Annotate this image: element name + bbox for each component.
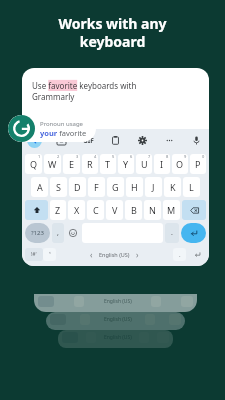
button[interactable]: Y <box>118 154 134 174</box>
button[interactable]: W <box>44 154 61 174</box>
staticText: 7 <box>148 154 151 159</box>
button[interactable]: O <box>172 154 188 174</box>
button[interactable]: Z <box>50 200 66 220</box>
button[interactable]: More options <box>162 133 177 148</box>
button[interactable]: A <box>31 177 48 197</box>
staticText: C <box>93 204 99 216</box>
button[interactable]: D <box>69 177 86 197</box>
staticText: H <box>131 181 138 193</box>
button[interactable]: C <box>87 200 104 220</box>
staticText: P <box>195 158 201 170</box>
staticText: 3 <box>76 154 79 159</box>
button[interactable]: V <box>106 200 123 220</box>
button[interactable]: Clipboard <box>108 133 123 148</box>
staticText: 2 <box>57 154 60 159</box>
staticText: Use favorite keyboards with Grammarly <box>32 80 137 103</box>
button[interactable]: S <box>50 177 67 197</box>
button[interactable]: Back <box>27 133 42 148</box>
staticText: English (US) <box>99 251 130 258</box>
staticText: B <box>131 204 137 216</box>
button[interactable]: Shift <box>25 200 48 220</box>
button[interactable]: M <box>163 200 180 220</box>
staticText: › <box>136 249 139 260</box>
staticText: English (US) <box>104 316 132 323</box>
staticText: English (US) <box>104 298 132 305</box>
button[interactable]: GIF <box>81 134 96 147</box>
staticText: E <box>69 158 75 170</box>
staticText: S <box>56 181 61 193</box>
button[interactable]: E <box>63 154 80 174</box>
staticText: 5 <box>112 154 115 159</box>
staticText: T <box>105 158 111 170</box>
button[interactable]: R <box>82 154 98 174</box>
staticText: J <box>152 181 155 193</box>
staticText: !#' <box>31 251 37 258</box>
button[interactable]: Comma <box>52 223 64 243</box>
button[interactable]: Settings <box>135 133 150 148</box>
staticText: V <box>112 204 118 216</box>
staticText: . <box>171 228 173 238</box>
button[interactable]: K <box>164 177 181 197</box>
staticText: ?123 <box>31 229 44 237</box>
staticText: G <box>112 181 119 193</box>
staticText: English (US) <box>104 334 132 341</box>
button[interactable]: Period <box>173 248 186 261</box>
staticText: K <box>170 181 176 193</box>
button[interactable]: Q <box>25 154 42 174</box>
staticText: . <box>179 251 181 259</box>
button[interactable]: Next language <box>136 249 139 260</box>
staticText: your favorite <box>40 128 87 138</box>
staticText: ‹ <box>90 249 93 260</box>
staticText: F <box>94 181 99 193</box>
staticText: M <box>167 204 176 216</box>
staticText: R <box>87 158 93 170</box>
button[interactable]: Symbols <box>43 248 56 261</box>
button[interactable]: Previous language <box>90 249 93 260</box>
button[interactable]: Return <box>188 248 206 261</box>
button[interactable]: T <box>100 154 116 174</box>
staticText: 0 <box>202 154 205 159</box>
staticText: Z <box>55 204 61 216</box>
button[interactable]: B <box>125 200 142 220</box>
button[interactable]: Enter <box>181 223 206 243</box>
staticText: O <box>176 158 184 170</box>
button[interactable]: F <box>88 177 105 197</box>
staticText: D <box>74 181 81 193</box>
staticText: L <box>189 181 194 193</box>
staticText: Y <box>123 158 129 170</box>
staticText: Works with any keyboard <box>0 14 225 51</box>
button[interactable]: P <box>190 154 206 174</box>
staticText: 4 <box>94 154 97 159</box>
button[interactable]: Backspace <box>182 200 206 220</box>
staticText: ¹ <box>49 251 51 258</box>
button[interactable]: Pronoun usage <box>8 115 96 142</box>
button[interactable]: G <box>107 177 124 197</box>
staticText: W <box>48 158 57 170</box>
staticText: GIF <box>83 136 94 145</box>
staticText: 9 <box>184 154 187 159</box>
button[interactable]: ?123 <box>25 223 50 243</box>
button[interactable]: X <box>68 200 85 220</box>
button[interactable]: Stickers <box>54 133 69 148</box>
button[interactable]: Period <box>165 223 179 243</box>
staticText: N <box>149 204 156 216</box>
button[interactable]: U <box>136 154 152 174</box>
staticText: Q <box>30 158 38 170</box>
staticText: A <box>37 181 43 193</box>
staticText: U <box>141 158 148 170</box>
button[interactable]: Emoji <box>66 223 80 243</box>
staticText: , <box>57 228 59 238</box>
button[interactable]: L <box>183 177 200 197</box>
button[interactable]: N <box>144 200 161 220</box>
button[interactable]: Voice input <box>189 133 204 148</box>
button[interactable]: H <box>126 177 143 197</box>
staticText: X <box>74 204 80 216</box>
button[interactable]: !#' <box>25 248 43 261</box>
staticText: Pronoun usage <box>40 120 83 128</box>
button[interactable]: I <box>154 154 170 174</box>
staticText: 6 <box>130 154 133 159</box>
staticText: 8 <box>166 154 169 159</box>
button[interactable]: J <box>145 177 162 197</box>
staticText: I <box>160 158 164 170</box>
